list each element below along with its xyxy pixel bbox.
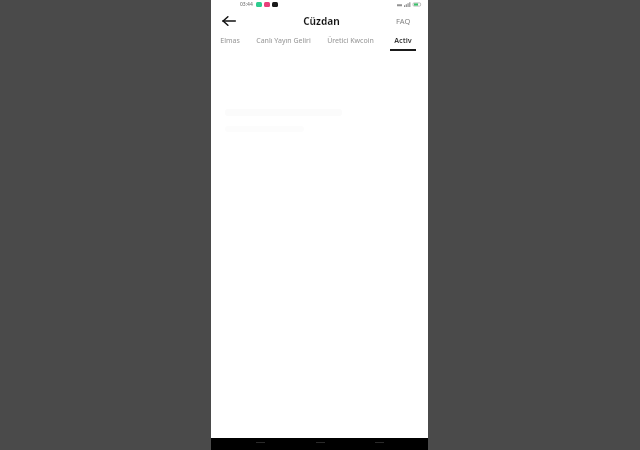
staticText: Activ	[394, 36, 412, 46]
button[interactable]: Home	[310, 442, 330, 450]
button[interactable]: Elmas	[220, 33, 240, 55]
staticText: Canlı Yayın Geliri	[256, 36, 311, 46]
button[interactable]: Üretici Kwcoin	[327, 33, 374, 55]
button[interactable]: FAQ	[393, 13, 414, 29]
staticText: 03:44	[240, 1, 253, 8]
button[interactable]: Back	[250, 442, 270, 450]
staticText: FAQ	[396, 16, 411, 26]
staticText: Elmas	[220, 36, 240, 46]
button[interactable]: Canlı Yayın Geliri	[256, 33, 311, 55]
button[interactable]: Back	[217, 9, 241, 33]
staticText: Üretici Kwcoin	[327, 36, 374, 46]
button[interactable]: Activ	[390, 33, 416, 55]
button[interactable]: Recents	[369, 442, 389, 450]
staticText: Cüzdan	[303, 14, 340, 28]
